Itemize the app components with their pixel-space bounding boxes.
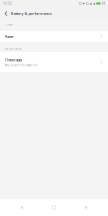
staticText: 84 xyxy=(102,2,105,5)
staticText: BATTERY SAVER xyxy=(4,47,22,50)
button[interactable]: Recents xyxy=(75,199,97,216)
button[interactable]: Back xyxy=(0,7,10,20)
button[interactable]: Power xyxy=(0,31,108,42)
button[interactable]: Choose apps xyxy=(0,52,108,72)
button[interactable]: Home xyxy=(43,199,65,216)
button[interactable]: Back xyxy=(10,199,32,216)
staticText: Saving power in the background xyxy=(4,63,38,67)
staticText: 16:52 xyxy=(3,2,12,5)
staticText: Power xyxy=(4,34,14,39)
staticText: Choose apps xyxy=(4,57,22,62)
staticText: Battery & performance xyxy=(10,11,51,16)
staticText: POWER xyxy=(4,23,13,26)
